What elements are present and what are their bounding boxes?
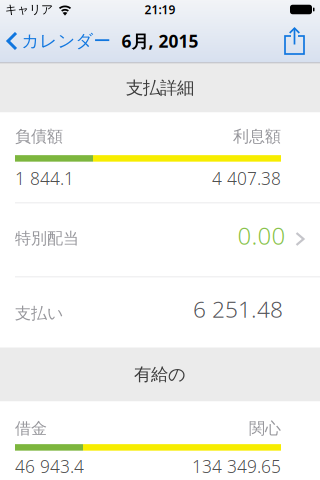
staticText: 21:19 [144, 1, 175, 17]
staticText: 支払い [15, 304, 63, 323]
button[interactable]: Share [284, 27, 320, 55]
staticText: 特別配当 [15, 229, 79, 248]
staticText: 0.00 [237, 220, 285, 251]
staticText: 支払詳細 [126, 77, 194, 99]
staticText: 関心 [249, 418, 281, 438]
staticText: 利息額 [233, 126, 281, 146]
staticText: キャリア [5, 2, 53, 17]
staticText: 負債額 [15, 126, 63, 146]
staticText: 4 407.38 [212, 167, 281, 190]
staticText: 6月, 2015 [121, 29, 198, 52]
staticText: 46 943.4 [15, 455, 84, 478]
staticText: カレンダー [21, 30, 110, 52]
staticText: 有給の [134, 364, 186, 385]
staticText: 借金 [15, 418, 47, 438]
staticText: 6 251.48 [193, 294, 283, 324]
staticText: 1 844.1 [15, 167, 74, 190]
staticText: 134 349.65 [192, 455, 281, 478]
button[interactable]: 特別配当 [0, 203, 320, 276]
button[interactable]: Back [0, 30, 110, 52]
